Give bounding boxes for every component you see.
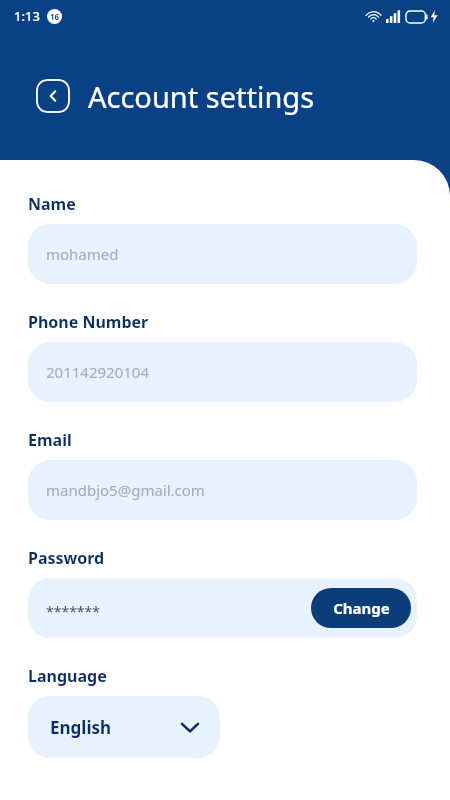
button[interactable]: ******* xyxy=(28,578,417,638)
staticText: Language xyxy=(28,665,107,687)
button[interactable]: mandbjo5@gmail.com xyxy=(28,460,417,520)
staticText: Password xyxy=(28,547,105,569)
staticText: Change xyxy=(333,598,390,618)
button[interactable]: 201142920104 xyxy=(28,342,417,402)
staticText: mandbjo5@gmail.com xyxy=(46,480,205,500)
staticText: Email xyxy=(28,429,72,451)
staticText: 201142920104 xyxy=(46,362,149,382)
button[interactable]: Change xyxy=(311,588,411,628)
staticText: 16 xyxy=(50,11,60,22)
staticText: Phone Number xyxy=(28,311,149,333)
staticText: English xyxy=(50,716,112,739)
button[interactable]: mohamed xyxy=(28,224,417,284)
staticText: Name xyxy=(28,193,76,215)
staticText: Account settings xyxy=(88,77,315,116)
button[interactable]: English xyxy=(28,696,220,758)
staticText: ******* xyxy=(46,602,100,621)
button[interactable]: Back xyxy=(36,79,70,113)
staticText: 1:13 xyxy=(14,7,40,25)
staticText: mohamed xyxy=(46,244,119,264)
